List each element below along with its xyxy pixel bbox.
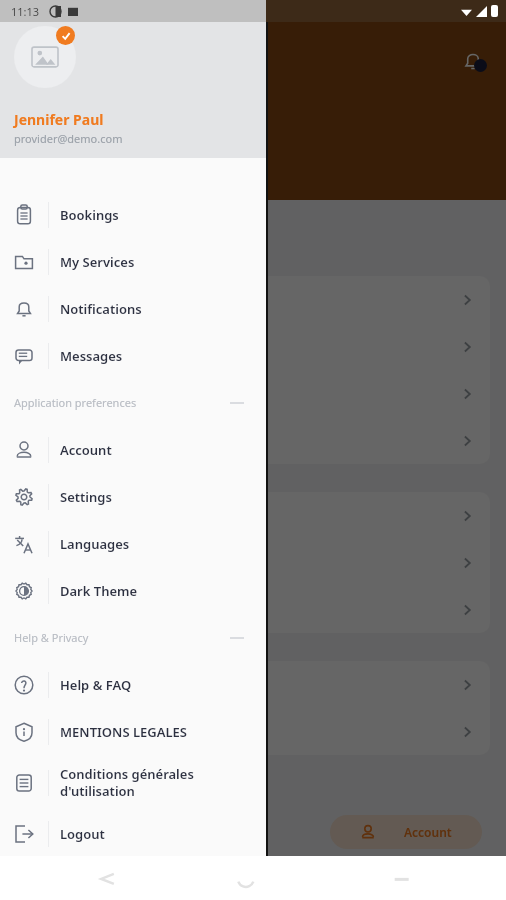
button[interactable] xyxy=(16,417,490,464)
staticText: Notifications xyxy=(60,300,142,318)
button[interactable] xyxy=(16,323,490,370)
button[interactable] xyxy=(16,661,490,708)
button[interactable]: Languages xyxy=(0,520,266,567)
staticText: 11:13 xyxy=(11,4,40,19)
staticText: My Account xyxy=(20,50,112,72)
staticText: provider@demo.com xyxy=(20,134,129,149)
button[interactable]: Settings xyxy=(0,473,266,520)
staticText: My Services xyxy=(60,253,135,271)
staticText: Jennifer Paul xyxy=(14,110,104,129)
staticText: provider@demo.com xyxy=(14,131,123,146)
staticText: Jennifer Paul xyxy=(20,112,116,132)
button[interactable] xyxy=(16,586,490,633)
button[interactable] xyxy=(16,708,490,755)
staticText: Help & Privacy xyxy=(14,630,89,645)
staticText: MENTIONS LEGALES xyxy=(60,723,187,741)
staticText: Account xyxy=(404,824,452,840)
staticText: Messages xyxy=(60,347,123,365)
button[interactable] xyxy=(16,370,490,417)
button[interactable]: Dark Theme xyxy=(0,567,266,614)
button[interactable] xyxy=(16,276,490,323)
staticText: Logout xyxy=(60,825,105,843)
button[interactable] xyxy=(16,539,490,586)
staticText: Bookings xyxy=(60,206,119,224)
staticText: Help & FAQ xyxy=(60,676,132,694)
button[interactable]: Messages xyxy=(0,332,266,379)
button[interactable]: Account xyxy=(330,815,482,849)
staticText: Conditions générales d'utilisation xyxy=(60,765,194,800)
button[interactable]: Account xyxy=(0,426,266,473)
button[interactable]: Notifications xyxy=(456,44,490,78)
button[interactable]: Help & FAQ xyxy=(0,661,266,708)
staticText: Account xyxy=(60,441,112,459)
button[interactable]: Conditions générales d'utilisation xyxy=(0,755,266,810)
staticText: Languages xyxy=(60,535,130,553)
button[interactable]: Notifications xyxy=(0,285,266,332)
button[interactable]: My Services xyxy=(0,238,266,285)
staticText: Settings xyxy=(60,488,112,506)
button[interactable]: MENTIONS LEGALES xyxy=(0,708,266,755)
button[interactable]: Logout xyxy=(0,810,266,857)
staticText: Application preferences xyxy=(14,395,137,410)
button[interactable] xyxy=(16,492,490,539)
staticText: Dark Theme xyxy=(60,582,138,600)
button[interactable]: Bookings xyxy=(0,191,266,238)
